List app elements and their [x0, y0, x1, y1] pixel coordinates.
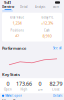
staticText: See all — [53, 46, 62, 50]
staticText: Details — [53, 94, 62, 97]
staticText: More Data — [2, 98, 22, 100]
staticText: Total Value — [9, 16, 24, 19]
staticText: 9:41 — [4, 0, 11, 5]
staticText: 0 — [6, 80, 9, 87]
staticText: 8,910 — [42, 33, 51, 38]
staticText: Overview — [2, 5, 14, 9]
button[interactable]: Detail — [16, 5, 32, 10]
button[interactable]: See all — [53, 46, 62, 50]
staticText: Positions — [10, 29, 23, 32]
staticText: Low — [37, 88, 42, 91]
staticText: Close — [52, 88, 60, 91]
button[interactable]: Analysis — [32, 5, 48, 10]
staticText: 1,234 — [12, 20, 21, 26]
staticText: Analysis — [35, 5, 45, 9]
staticText: 82.79 — [49, 80, 62, 87]
staticText: Open — [4, 88, 12, 91]
staticText: Detail — [20, 5, 28, 9]
staticText: 173.66 — [16, 80, 32, 87]
staticText: Today P/L — [41, 16, 53, 19]
staticText: Market open — [5, 94, 22, 97]
button[interactable]: Overview — [0, 5, 16, 10]
staticText: Cash — [44, 29, 50, 32]
staticText: 0 — [38, 80, 41, 87]
staticText: More — [52, 5, 59, 9]
staticText: Key Stats — [2, 72, 20, 77]
staticText: High — [20, 88, 27, 91]
staticText: Performance — [2, 45, 26, 51]
staticText: +12.3% — [41, 20, 53, 26]
button[interactable]: Details — [53, 94, 62, 97]
button[interactable]: More — [48, 5, 64, 10]
staticText: 42 — [15, 33, 19, 38]
